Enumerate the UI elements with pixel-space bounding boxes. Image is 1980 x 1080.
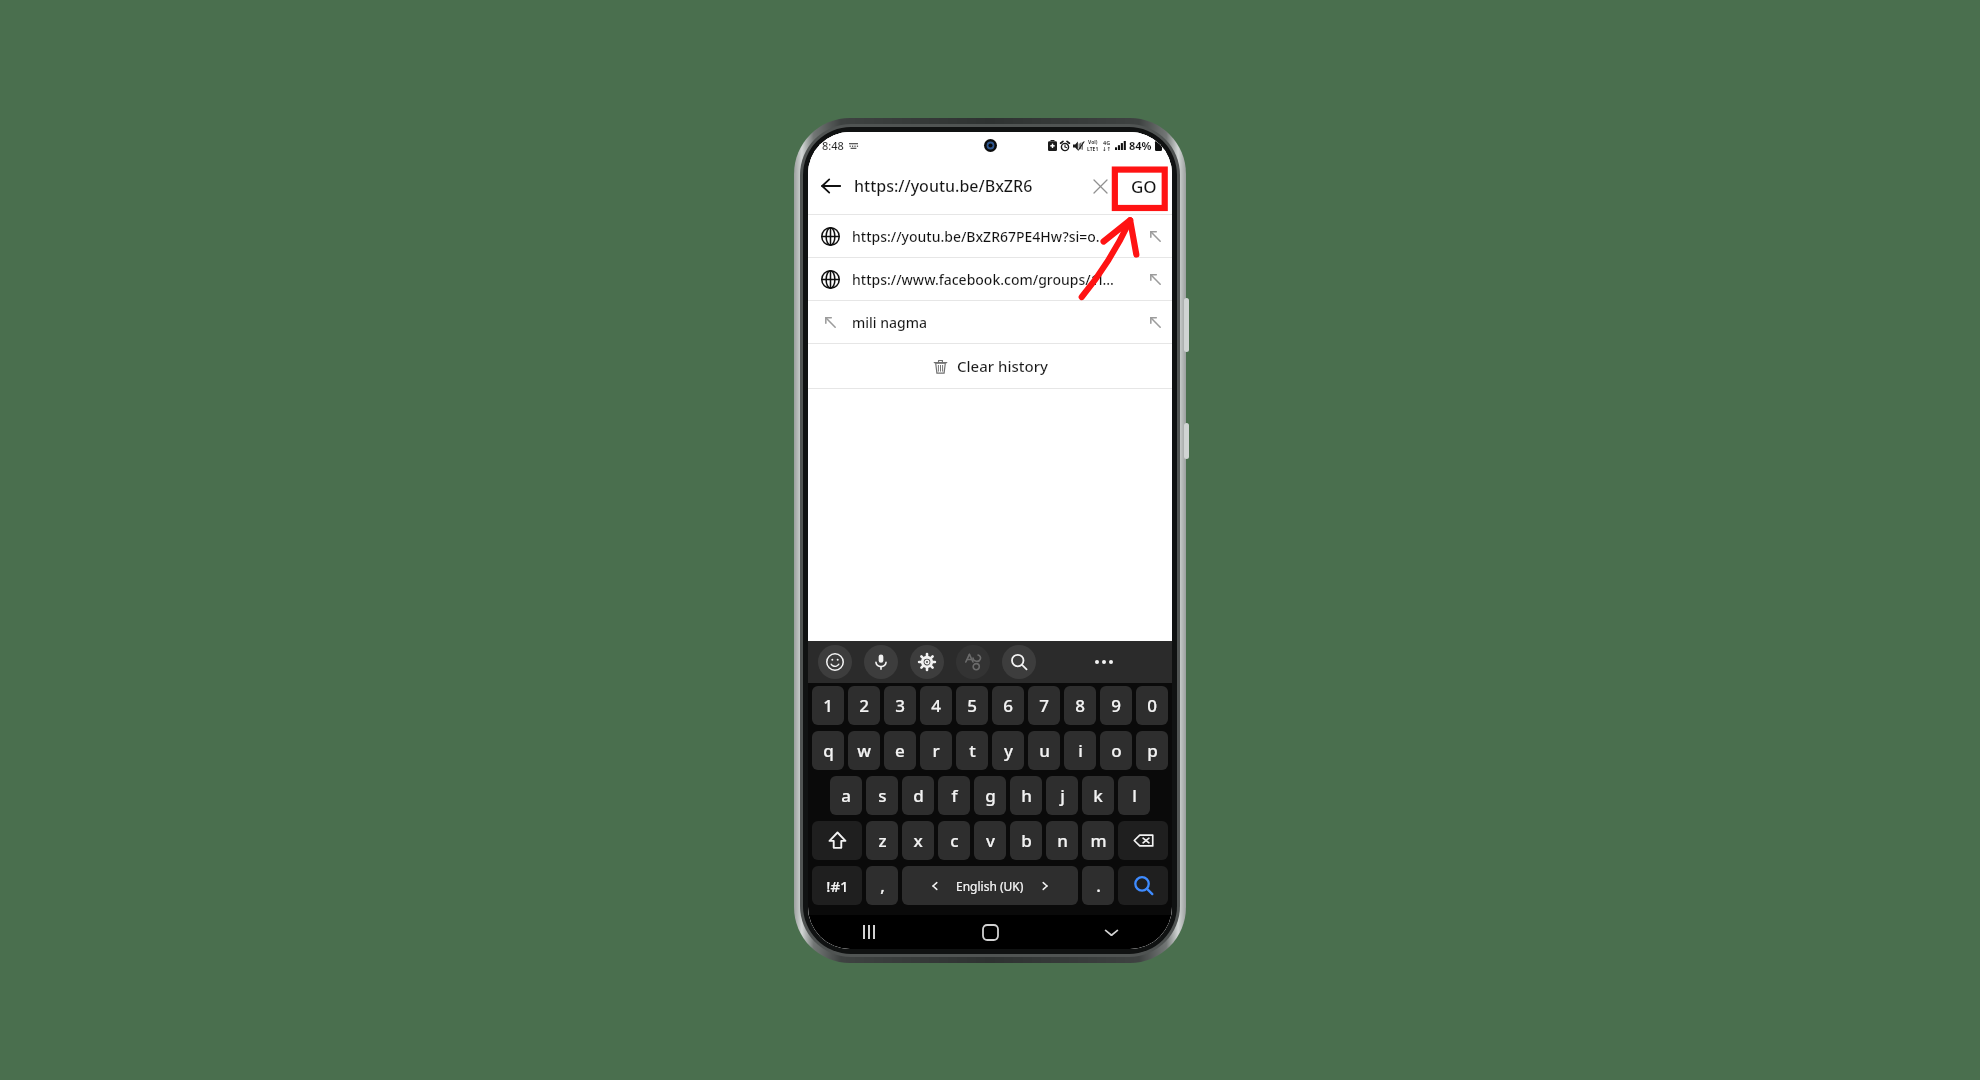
button[interactable]: t — [956, 731, 988, 770]
button[interactable]: p — [1136, 731, 1168, 770]
staticText: mili nagma — [852, 313, 1138, 332]
button[interactable]: Emoji — [818, 645, 852, 679]
button[interactable]: 5 — [956, 686, 988, 725]
staticText: b — [1021, 829, 1032, 852]
button[interactable]: k — [1082, 776, 1114, 815]
staticText: 4G — [1103, 139, 1111, 146]
staticText: 1 — [823, 694, 833, 717]
staticText: u — [1039, 739, 1050, 762]
button[interactable]: 2 — [848, 686, 880, 725]
button[interactable]: b — [1010, 821, 1042, 860]
button[interactable]: Hide keyboard — [1051, 915, 1172, 949]
button[interactable]: j — [1046, 776, 1078, 815]
button[interactable]: . — [1082, 866, 1114, 905]
staticText: 9 — [1111, 694, 1121, 717]
button[interactable]: GO — [1116, 158, 1172, 214]
button[interactable]: Home — [930, 915, 1051, 949]
staticText: 4 — [931, 694, 941, 717]
button[interactable]: Backspace — [1118, 821, 1168, 860]
staticText: English (UK) — [956, 878, 1024, 894]
staticText: q — [823, 739, 834, 762]
button[interactable]: Clear text — [1084, 170, 1116, 202]
staticText: 8 — [1075, 694, 1085, 717]
staticText: f — [951, 784, 958, 807]
button[interactable]: Translate — [956, 645, 990, 679]
button[interactable]: 1 — [812, 686, 844, 725]
button[interactable]: 4 — [920, 686, 952, 725]
staticText: GO — [1131, 175, 1157, 198]
button[interactable]: l — [1118, 776, 1150, 815]
button[interactable]: 0 — [1136, 686, 1168, 725]
button[interactable]: r — [920, 731, 952, 770]
button[interactable]: 3 — [884, 686, 916, 725]
staticText: !#1 — [826, 876, 849, 896]
staticText: l — [1132, 784, 1137, 807]
button[interactable]: z — [866, 821, 898, 860]
button[interactable]: c — [938, 821, 970, 860]
button[interactable]: a — [830, 776, 862, 815]
button[interactable]: g — [974, 776, 1006, 815]
button[interactable]: Search — [1002, 645, 1036, 679]
button[interactable]: Clear history — [808, 344, 1172, 388]
staticText: x — [913, 829, 923, 852]
button[interactable]: n — [1046, 821, 1078, 860]
button[interactable]: Recents — [808, 915, 930, 949]
staticText: i — [1078, 739, 1083, 762]
button[interactable]: e — [884, 731, 916, 770]
button[interactable]: f — [938, 776, 970, 815]
staticText: 5 — [967, 694, 977, 717]
button[interactable]: , — [866, 866, 898, 905]
staticText: v — [986, 829, 995, 852]
staticText: m — [1090, 829, 1107, 852]
button[interactable]: !#1 — [812, 866, 862, 905]
button[interactable]: m — [1082, 821, 1114, 860]
button[interactable]: i — [1064, 731, 1096, 770]
button[interactable]: d — [902, 776, 934, 815]
staticText: Clear history — [957, 356, 1048, 376]
staticText: . — [1096, 874, 1101, 897]
staticText: 3 — [895, 694, 905, 717]
button[interactable]: More options — [1036, 641, 1172, 683]
staticText: o — [1111, 739, 1122, 762]
button[interactable]: Search — [1118, 866, 1168, 905]
staticText: https://www.facebook.com/groups/1l… — [852, 270, 1138, 289]
button[interactable]: English (UK) — [902, 866, 1078, 905]
button[interactable]: x — [902, 821, 934, 860]
staticText: a — [841, 784, 851, 807]
staticText: , — [880, 874, 885, 897]
staticText: LTE1 — [1087, 146, 1099, 153]
staticText: w — [857, 739, 871, 762]
button[interactable]: 9 — [1100, 686, 1132, 725]
button[interactable]: https://www.facebook.com/groups/1l… — [808, 258, 1172, 300]
staticText: r — [932, 739, 940, 762]
staticText: Vol) — [1088, 139, 1098, 146]
staticText: 2 — [859, 694, 869, 717]
button[interactable]: w — [848, 731, 880, 770]
staticText: 7 — [1039, 694, 1049, 717]
staticText: https://youtu.be/BxZR67PE4Hw?si=o. — [852, 227, 1138, 246]
button[interactable]: y — [992, 731, 1024, 770]
staticText: https://youtu.be/BxZR6 — [854, 175, 1084, 197]
staticText: g — [985, 784, 996, 807]
button[interactable]: o — [1100, 731, 1132, 770]
button[interactable]: h — [1010, 776, 1042, 815]
button[interactable]: Keyboard settings — [910, 645, 944, 679]
button[interactable]: 8 — [1064, 686, 1096, 725]
staticText: n — [1057, 829, 1068, 852]
button[interactable]: Voice input — [864, 645, 898, 679]
staticText: h — [1021, 784, 1032, 807]
button[interactable]: u — [1028, 731, 1060, 770]
button[interactable]: https://youtu.be/BxZR67PE4Hw?si=o. — [808, 215, 1172, 257]
button[interactable]: 7 — [1028, 686, 1060, 725]
button[interactable]: Shift — [812, 821, 862, 860]
button[interactable]: s — [866, 776, 898, 815]
button[interactable]: 6 — [992, 686, 1024, 725]
staticText: 0 — [1147, 694, 1157, 717]
button[interactable]: q — [812, 731, 844, 770]
button[interactable]: mili nagma — [808, 301, 1172, 343]
staticText: p — [1147, 739, 1158, 762]
button[interactable]: Back — [808, 158, 854, 214]
button[interactable]: v — [974, 821, 1006, 860]
staticText: d — [913, 784, 924, 807]
staticText: t — [969, 739, 976, 762]
